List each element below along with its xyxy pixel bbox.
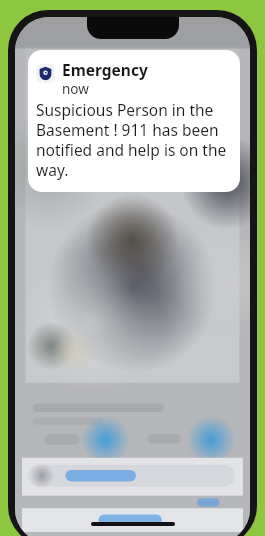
staticText: Emergency <box>62 59 148 80</box>
staticText: Suspicious Person in the Basement ! 911 … <box>36 99 230 181</box>
other: Emergency app icon <box>36 64 55 83</box>
button[interactable]: Emergency app icon <box>28 50 240 192</box>
staticText: now <box>62 80 89 98</box>
